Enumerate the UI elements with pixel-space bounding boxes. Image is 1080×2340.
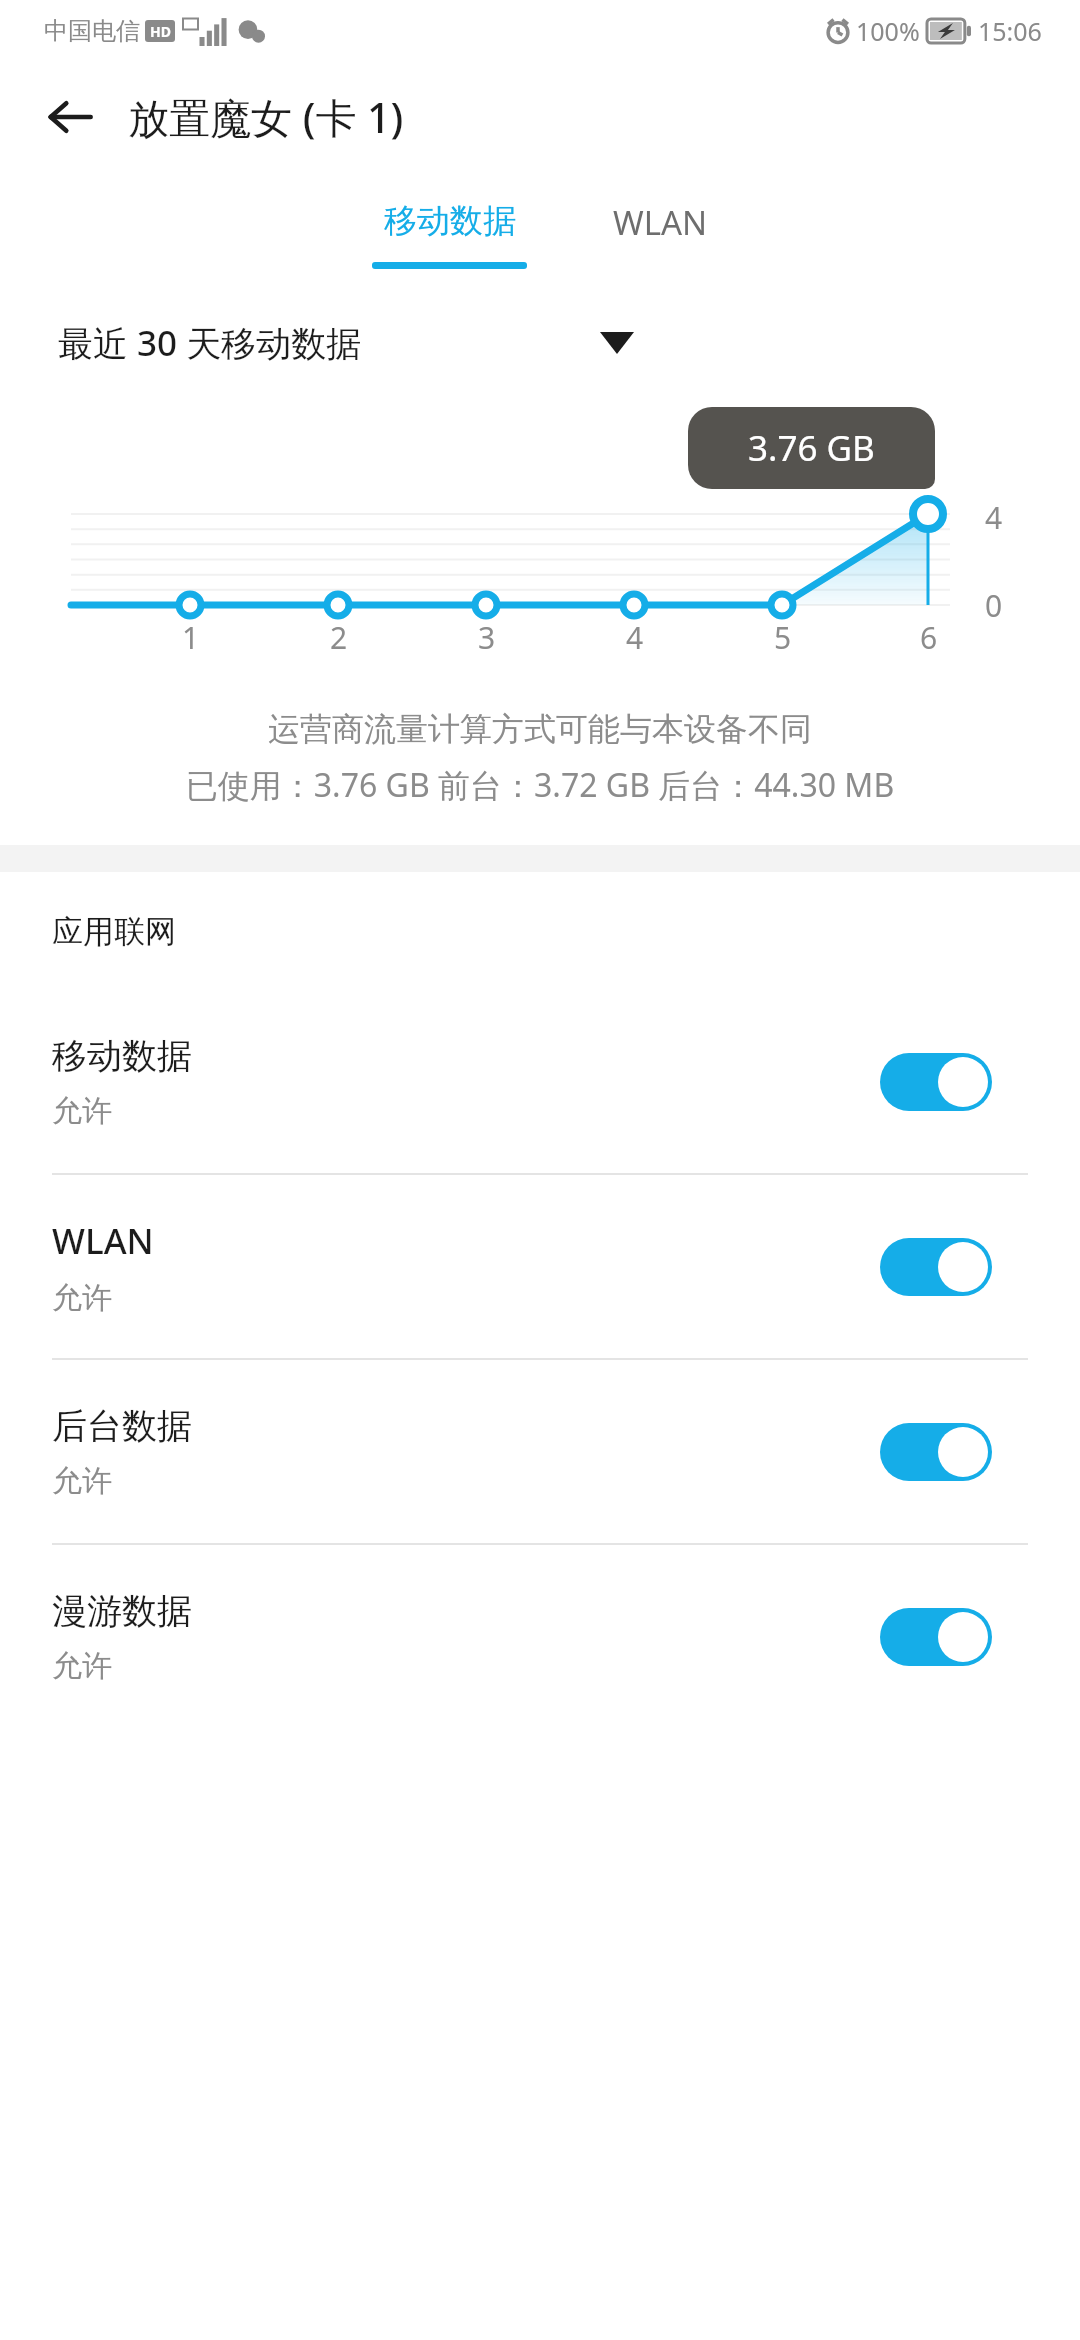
staticText: 100% [856,14,920,48]
staticText: 放置魔女 (卡 1) [128,89,404,145]
staticText: 4 [985,497,1003,538]
button[interactable]: WLAN toggle [880,1238,992,1296]
staticText: WLAN [613,200,708,245]
staticText: 5 [774,617,792,658]
button[interactable]: WLAN [0,1175,1080,1358]
button[interactable]: Back [30,77,110,157]
staticText: 0 [985,585,1003,626]
button[interactable]: 漫游数据 [0,1545,1080,1728]
staticText: 2 [330,617,348,658]
button[interactable]: 后台数据 [0,1360,1080,1543]
button[interactable]: 移动数据 toggle [880,1053,992,1111]
staticText: 移动数据 [384,200,516,242]
staticText: 6 [920,617,938,658]
staticText: 允许 [52,1647,112,1685]
staticText: 4 [626,617,644,658]
staticText: 最近 30 天移动数据 [58,319,362,367]
staticText: 允许 [52,1462,112,1500]
staticText: 运营商流量计算方式可能与本设备不同 [20,709,1060,749]
staticText: HD [150,22,171,41]
staticText: 3 [478,617,496,658]
staticText: 允许 [52,1279,112,1317]
staticText: 1 [182,617,200,658]
button[interactable]: 移动数据 [0,990,1080,1173]
button[interactable]: WLAN [591,192,730,253]
staticText: 应用联网 [52,912,176,951]
button[interactable]: 移动数据 [350,192,549,277]
staticText: 15:06 [978,14,1042,48]
staticText: 后台数据 [52,1404,192,1448]
staticText: 移动数据 [52,1034,192,1078]
button[interactable]: 最近 30 天移动数据 [0,297,1080,389]
staticText: WLAN [52,1217,154,1265]
button[interactable]: 漫游数据 toggle [880,1608,992,1666]
staticText: 中国电信 [44,16,140,46]
staticText: 3.76 GB [748,424,875,472]
staticText: 已使用：3.76 GB 前台：3.72 GB 后台：44.30 MB [14,763,1066,807]
staticText: 允许 [52,1092,112,1130]
staticText: 漫游数据 [52,1589,192,1633]
button[interactable]: 后台数据 toggle [880,1423,992,1481]
